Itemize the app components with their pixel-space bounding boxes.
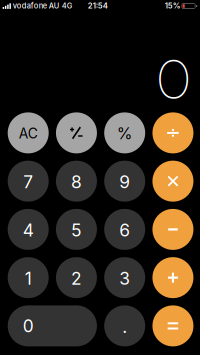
staticText: 7 (23, 171, 33, 192)
button[interactable]: Multiply (152, 161, 193, 202)
button[interactable]: Plus minus (56, 112, 97, 153)
button[interactable]: 6 (104, 209, 145, 250)
staticText: 5 (71, 220, 82, 241)
button[interactable]: 9 (104, 161, 145, 202)
staticText: 4 (23, 220, 34, 241)
staticText: . (122, 316, 127, 337)
button[interactable]: Plus (152, 257, 193, 298)
button[interactable]: 1 (8, 257, 49, 298)
button[interactable]: 7 (8, 161, 49, 202)
staticText: 0 (23, 315, 34, 336)
staticText: % (117, 124, 133, 143)
button[interactable]: 0 (8, 305, 97, 346)
button[interactable]: Minus (152, 209, 193, 250)
staticText: AC (19, 125, 38, 142)
staticText: 2 (71, 268, 82, 289)
staticText: vodafone AU 4G (13, 1, 73, 10)
button[interactable]: Divide (152, 112, 193, 153)
staticText: 6 (119, 220, 130, 241)
button[interactable]: % (104, 112, 145, 153)
button[interactable]: Equals (152, 305, 193, 346)
button[interactable]: 2 (56, 257, 97, 298)
button[interactable]: 3 (104, 257, 145, 298)
staticText: 21:54 (88, 1, 108, 10)
staticText: 8 (71, 171, 82, 192)
staticText: 9 (119, 171, 130, 192)
button[interactable]: 5 (56, 209, 97, 250)
button[interactable]: . (104, 305, 145, 346)
staticText: 1 (25, 268, 32, 289)
staticText: 15% (165, 1, 181, 10)
button[interactable]: AC (8, 112, 49, 153)
staticText: 3 (119, 268, 130, 289)
button[interactable]: 8 (56, 161, 97, 202)
staticText: 0 (157, 46, 189, 112)
button[interactable]: 4 (8, 209, 49, 250)
